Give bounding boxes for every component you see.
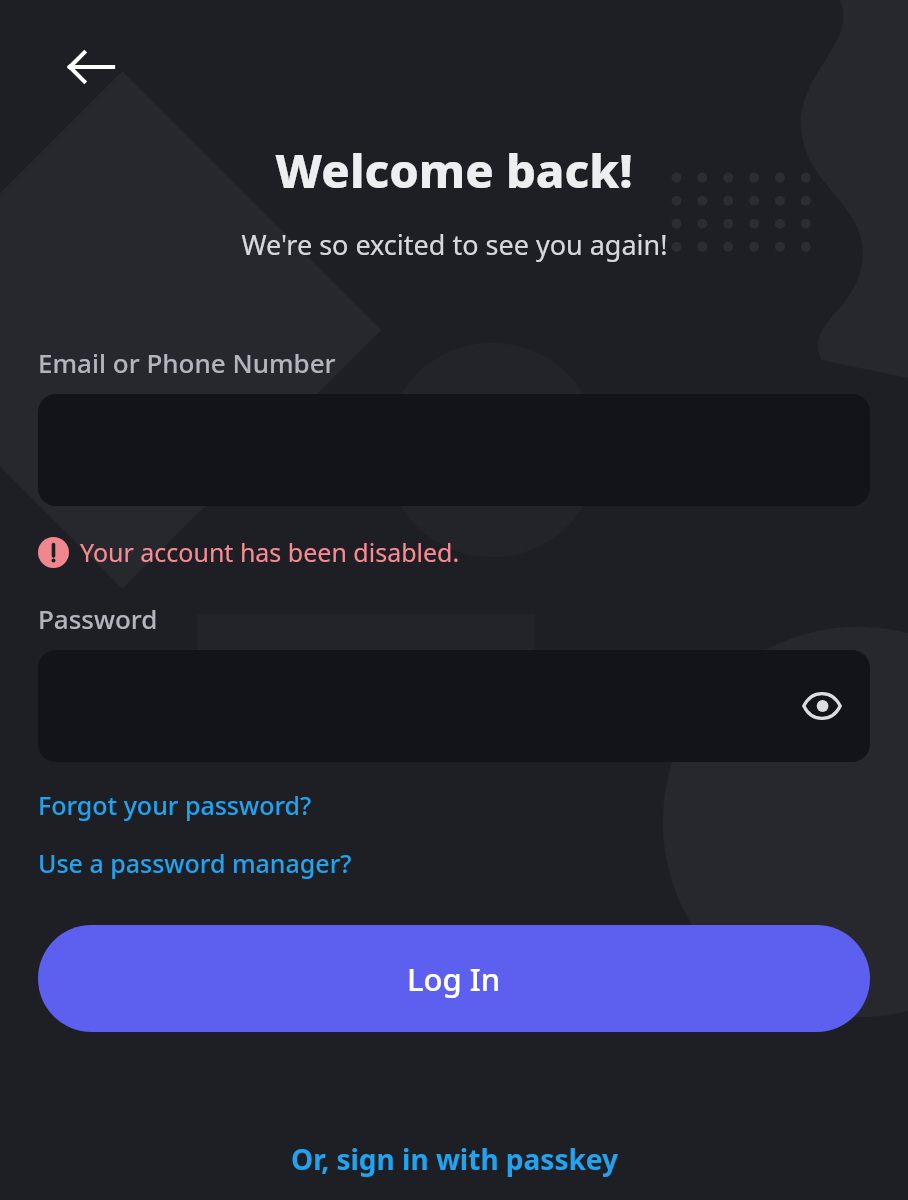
staticText: Password — [38, 601, 158, 636]
staticText: Log In — [407, 958, 501, 1000]
button[interactable]: Back — [52, 28, 130, 106]
staticText: Welcome back! — [275, 138, 633, 202]
button[interactable]: Password field — [38, 650, 870, 762]
button[interactable]: Or, sign in with passkey — [275, 1132, 634, 1186]
button[interactable]: Forgot your password? — [38, 788, 312, 822]
staticText: We're so excited to see you again! — [241, 226, 668, 263]
staticText: Forgot your password? — [38, 788, 312, 822]
button[interactable]: Use a password manager? — [38, 846, 352, 880]
button[interactable]: Log In — [38, 925, 870, 1032]
staticText: Or, sign in with passkey — [291, 1140, 618, 1178]
button[interactable]: Show password — [794, 678, 850, 734]
staticText: Email or Phone Number — [38, 345, 336, 380]
staticText: Use a password manager? — [38, 846, 352, 880]
staticText: Your account has been disabled. — [80, 535, 460, 569]
